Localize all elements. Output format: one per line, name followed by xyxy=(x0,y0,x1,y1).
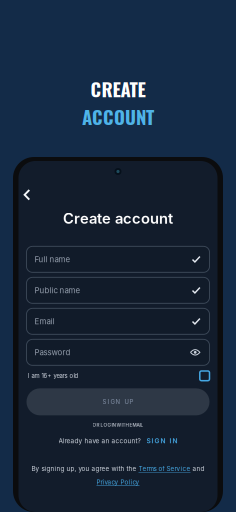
button[interactable]: Public name xyxy=(26,277,209,303)
button[interactable]: Email xyxy=(26,308,209,334)
button[interactable]: Privacy Policy xyxy=(96,478,139,486)
staticText: Public name xyxy=(34,286,80,295)
staticText: Password xyxy=(34,348,70,357)
staticText: S I G N I N xyxy=(146,437,177,445)
staticText: ACCOUNT xyxy=(82,103,154,130)
staticText: Privacy Policy xyxy=(96,478,139,486)
staticText: By signing up, you agree with the xyxy=(31,465,138,472)
button[interactable]: Back xyxy=(18,186,36,204)
button[interactable]: S I G N U P xyxy=(26,388,209,415)
staticText: I am 16+ years old xyxy=(27,372,78,379)
staticText: Create account xyxy=(63,210,173,227)
button[interactable]: Full name xyxy=(26,246,209,272)
staticText: Terms of Service xyxy=(138,465,190,472)
button[interactable]: Terms of Service xyxy=(138,465,190,472)
staticText: Full name xyxy=(34,255,70,264)
button[interactable]: I am 16 or older xyxy=(200,371,209,381)
staticText: CREATE xyxy=(90,75,145,103)
staticText: Already have an account? xyxy=(58,437,140,445)
staticText: and xyxy=(190,465,204,472)
staticText: Email xyxy=(34,317,54,326)
button[interactable]: Password xyxy=(26,339,209,365)
button[interactable]: S I G N I N xyxy=(146,437,177,445)
staticText: S I G N U P xyxy=(102,398,133,405)
staticText: O R L O G I N W I T H E M A I L xyxy=(92,422,143,428)
